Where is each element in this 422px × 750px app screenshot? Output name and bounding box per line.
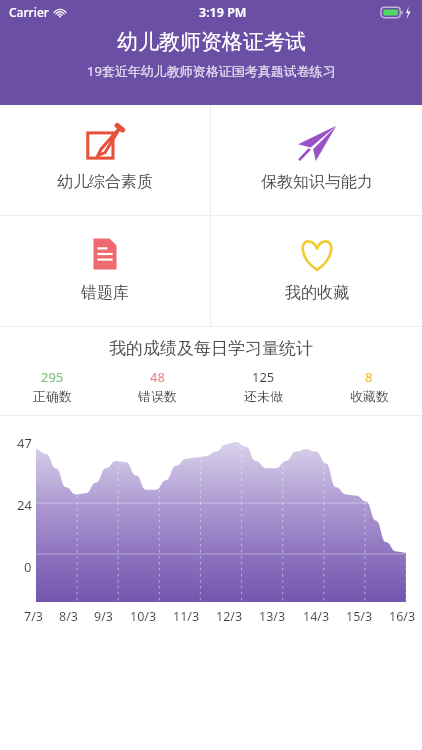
staticText: 47	[17, 434, 32, 452]
staticText: 收藏数	[350, 388, 389, 404]
staticText: 12/3	[216, 608, 243, 625]
staticText: 错误数	[138, 388, 177, 404]
staticText: 8	[365, 368, 373, 386]
staticText: 保教知识与能力	[261, 172, 373, 192]
staticText: 19套近年幼儿教师资格证国考真题试卷练习	[87, 62, 336, 80]
staticText: 0	[24, 558, 32, 576]
staticText: Carrier	[9, 4, 49, 20]
button[interactable]: 295	[0, 368, 105, 404]
button[interactable]: 幼儿综合素质	[0, 105, 210, 215]
staticText: 7/3	[24, 608, 43, 625]
staticText: 14/3	[303, 608, 330, 625]
staticText: 24	[17, 496, 32, 514]
staticText: 还未做	[244, 388, 283, 404]
staticText: 错题库	[81, 283, 129, 303]
staticText: 48	[150, 368, 165, 386]
staticText: 125	[252, 368, 275, 386]
staticText: 13/3	[259, 608, 286, 625]
button[interactable]: 8	[316, 368, 422, 404]
button[interactable]: 48	[105, 368, 210, 404]
staticText: 我的成绩及每日学习量统计	[109, 338, 313, 359]
staticText: 幼儿综合素质	[57, 172, 153, 192]
button[interactable]: 保教知识与能力	[211, 105, 422, 215]
staticText: 16/3	[389, 608, 416, 625]
staticText: 3:19 PM	[199, 4, 247, 21]
staticText: 8/3	[59, 608, 78, 625]
staticText: 11/3	[173, 608, 200, 625]
button[interactable]: 我的收藏	[211, 216, 422, 326]
staticText: 幼儿教师资格证考试	[117, 29, 306, 55]
staticText: 10/3	[130, 608, 157, 625]
staticText: 正确数	[33, 388, 72, 404]
button[interactable]: 125	[210, 368, 316, 404]
staticText: 9/3	[94, 608, 113, 625]
button[interactable]: 错题库	[0, 216, 210, 326]
staticText: 295	[41, 368, 64, 386]
staticText: 我的收藏	[285, 283, 349, 303]
staticText: 15/3	[346, 608, 373, 625]
